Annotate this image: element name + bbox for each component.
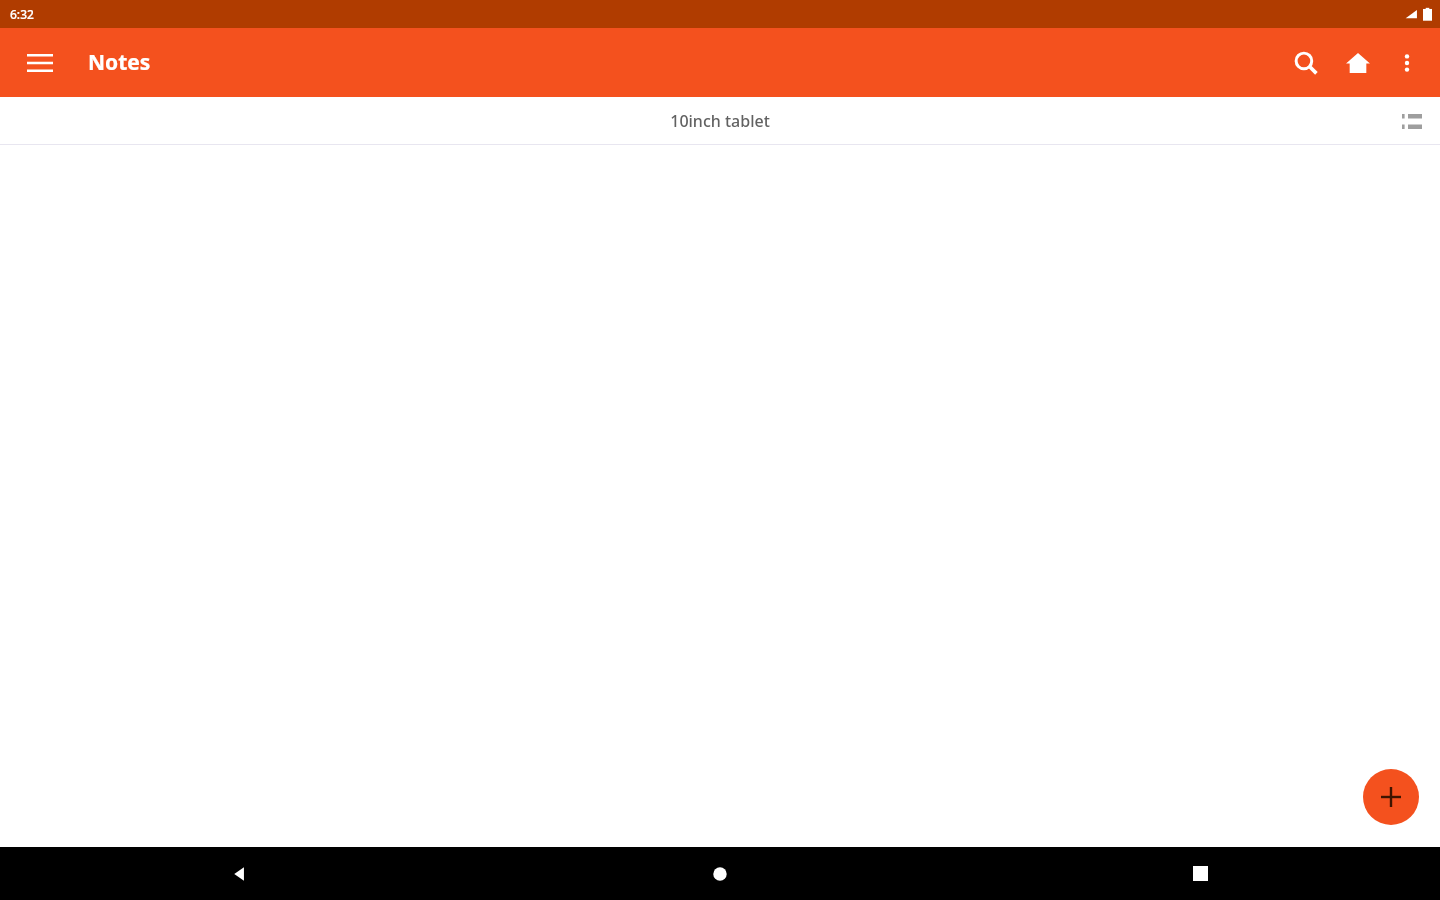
button[interactable]: Open navigation drawer (16, 39, 64, 87)
button[interactable]: Search (1280, 37, 1332, 89)
button[interactable]: Home (1332, 37, 1384, 89)
button[interactable]: Back (0, 847, 480, 900)
button[interactable]: More options (1384, 40, 1430, 86)
staticText: 10inch tablet (670, 110, 770, 132)
staticText: 6:32 (10, 6, 34, 22)
button[interactable]: Recent apps (960, 847, 1440, 900)
button[interactable]: Change view layout (1392, 101, 1432, 141)
button[interactable]: Add note (1363, 769, 1419, 825)
staticText: Notes (88, 48, 151, 77)
button[interactable]: Home (480, 847, 960, 900)
